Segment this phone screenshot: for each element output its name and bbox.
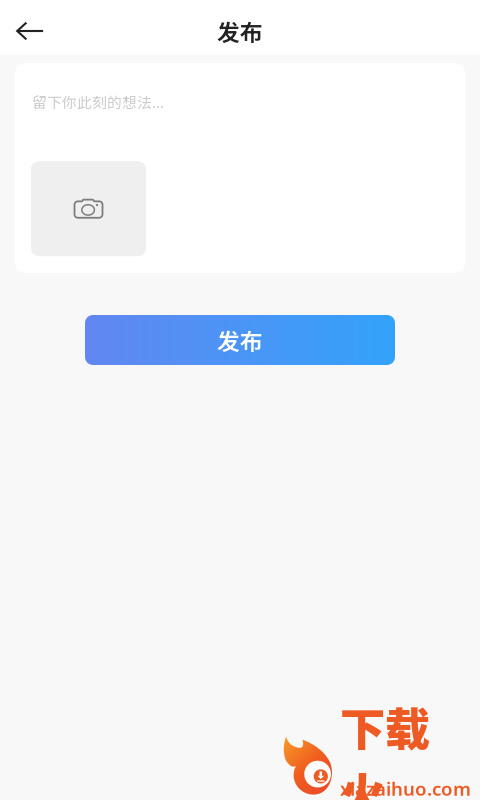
staticText: 留下你此刻的想法... bbox=[32, 91, 164, 112]
staticText: xiazaihuo.com bbox=[340, 776, 471, 800]
staticText: 发布 bbox=[217, 324, 263, 356]
button[interactable]: 发布 bbox=[85, 315, 395, 365]
staticText: 下载火 bbox=[340, 693, 430, 800]
staticText: 发布 bbox=[217, 15, 263, 47]
button[interactable]: Back bbox=[8, 9, 52, 53]
button[interactable]: Add photo bbox=[31, 161, 146, 256]
